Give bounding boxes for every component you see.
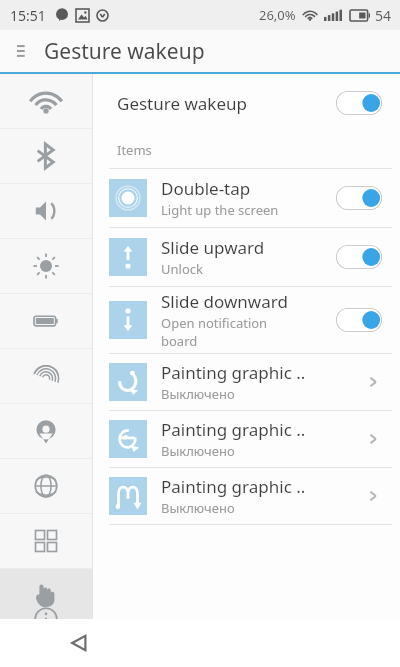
button[interactable]: Apps [0, 514, 92, 568]
staticText: Open notification board [161, 314, 268, 350]
staticText: Painting graphic .. [161, 418, 306, 441]
staticText: Slide upward [161, 236, 265, 259]
button[interactable]: Toggle [336, 308, 382, 332]
button[interactable]: Brightness [0, 239, 92, 293]
staticText: 26,0% [259, 6, 296, 24]
staticText: 54 [375, 6, 392, 25]
button[interactable]: Wi-Fi [0, 74, 92, 128]
staticText: Double-tap [161, 177, 251, 200]
button[interactable]: Double-tap [93, 169, 400, 227]
button[interactable]: Toggle [336, 186, 382, 210]
button[interactable]: Toggle [336, 245, 382, 269]
button[interactable]: Bluetooth [0, 129, 92, 183]
staticText: Gesture wakeup [117, 92, 247, 115]
button[interactable]: Painting graphic .. [93, 411, 400, 467]
button[interactable]: Gestures [0, 569, 92, 619]
staticText: Painting graphic .. [161, 475, 306, 498]
button[interactable]: Painting graphic .. [93, 354, 400, 410]
staticText: Items [117, 141, 152, 159]
staticText: Gesture wakeup [44, 37, 205, 66]
button[interactable]: Gesture wakeup [93, 74, 400, 132]
button[interactable]: Location [0, 404, 92, 458]
staticText: 15:51 [10, 6, 46, 25]
staticText: Выключено [161, 442, 235, 460]
staticText: Unlock [161, 260, 203, 278]
staticText: Painting graphic .. [161, 361, 306, 384]
staticText: Выключено [161, 385, 235, 403]
button[interactable]: Network [0, 459, 92, 513]
button[interactable]: Fingerprint [0, 349, 92, 403]
button[interactable]: Painting graphic .. [93, 468, 400, 524]
button[interactable]: Toggle [336, 91, 382, 115]
staticText: Выключено [161, 499, 235, 517]
staticText: Slide downward [161, 290, 288, 313]
button[interactable]: Slide downward [93, 287, 400, 353]
button[interactable]: Menu [12, 39, 36, 63]
staticText: Light up the screen [161, 201, 279, 219]
button[interactable]: Back [62, 626, 96, 660]
button[interactable]: Sound [0, 184, 92, 238]
button[interactable]: Battery [0, 294, 92, 348]
button[interactable]: Slide upward [93, 228, 400, 286]
